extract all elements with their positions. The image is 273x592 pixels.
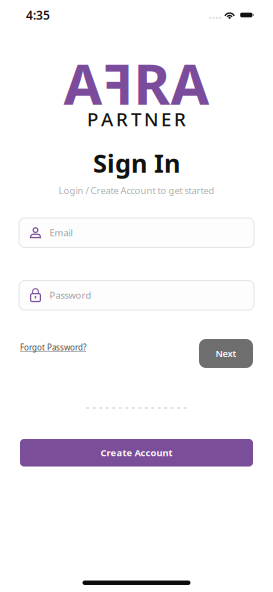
button[interactable]: Create Account bbox=[20, 439, 253, 466]
button[interactable]: Forgot Password? bbox=[20, 339, 86, 353]
staticText: Create Account bbox=[100, 447, 172, 459]
staticText: Sign In bbox=[93, 146, 180, 180]
staticText: P A R T N E R bbox=[87, 107, 186, 131]
button[interactable]: Next bbox=[199, 339, 253, 368]
staticText: Forgot Password? bbox=[20, 342, 86, 353]
staticText: Login / Create Account to get started bbox=[58, 184, 214, 197]
button[interactable]: Password bbox=[19, 280, 254, 310]
staticText: F bbox=[102, 46, 133, 120]
staticText: R bbox=[133, 46, 170, 120]
staticText: Next bbox=[215, 347, 236, 360]
button[interactable]: Email bbox=[19, 218, 254, 247]
staticText: Email bbox=[49, 227, 72, 239]
staticText: 4:35 bbox=[26, 7, 50, 23]
staticText: A bbox=[170, 46, 209, 120]
staticText: A bbox=[63, 46, 102, 120]
staticText: Password bbox=[49, 289, 91, 301]
